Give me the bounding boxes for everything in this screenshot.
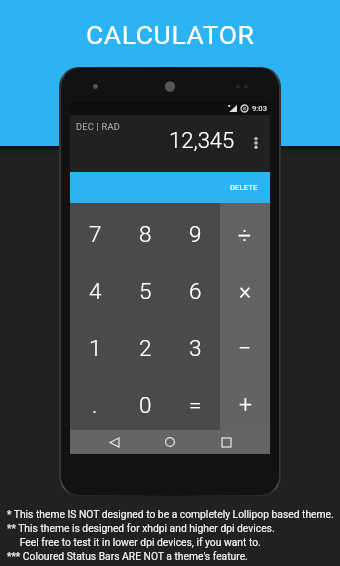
button[interactable]: ×: [220, 259, 270, 316]
button[interactable]: .: [70, 373, 120, 430]
button[interactable]: 5: [120, 259, 170, 316]
button[interactable]: 6: [170, 259, 220, 316]
button[interactable]: +: [220, 373, 270, 430]
staticText: 7: [89, 221, 102, 247]
button[interactable]: 2: [120, 316, 170, 373]
button[interactable]: DELETE: [70, 172, 270, 203]
button[interactable]: ÷: [220, 203, 270, 259]
staticText: =: [189, 392, 202, 418]
staticText: ÷: [238, 222, 252, 249]
staticText: 9:03: [252, 104, 267, 113]
staticText: 9: [189, 221, 202, 247]
staticText: * This theme IS NOT designed to be a com…: [7, 508, 334, 520]
staticText: Feel free to test it in lower dpi device…: [7, 536, 261, 548]
staticText: 2: [139, 335, 152, 361]
button[interactable]: More options: [248, 132, 264, 154]
staticText: *** Coloured Status Bars ARE NOT a theme…: [7, 550, 248, 562]
button[interactable]: Home: [158, 430, 182, 454]
button[interactable]: =: [170, 373, 220, 430]
staticText: 6: [189, 278, 202, 304]
button[interactable]: 9: [170, 203, 220, 259]
staticText: 0: [139, 392, 152, 418]
staticText: 3: [189, 335, 202, 361]
button[interactable]: −: [220, 316, 270, 373]
staticText: ×: [239, 278, 252, 305]
staticText: −: [238, 335, 252, 362]
button[interactable]: Recents: [214, 430, 238, 454]
button[interactable]: 4: [70, 259, 120, 316]
staticText: ** This theme is designed for xhdpi and …: [7, 522, 275, 534]
staticText: DEC | RAD: [76, 121, 120, 132]
staticText: +: [239, 392, 252, 419]
button[interactable]: 0: [120, 373, 170, 430]
staticText: 1: [89, 335, 102, 361]
staticText: 5: [139, 278, 152, 304]
staticText: DELETE: [230, 183, 258, 192]
button[interactable]: 1: [70, 316, 120, 373]
staticText: 4: [89, 278, 102, 304]
button[interactable]: 8: [120, 203, 170, 259]
staticText: 12,345: [169, 128, 235, 154]
button[interactable]: 7: [70, 203, 120, 259]
button[interactable]: Back: [102, 430, 126, 454]
staticText: CALCULATOR: [86, 19, 255, 50]
staticText: .: [92, 392, 98, 418]
button[interactable]: 3: [170, 316, 220, 373]
staticText: 8: [139, 221, 152, 247]
